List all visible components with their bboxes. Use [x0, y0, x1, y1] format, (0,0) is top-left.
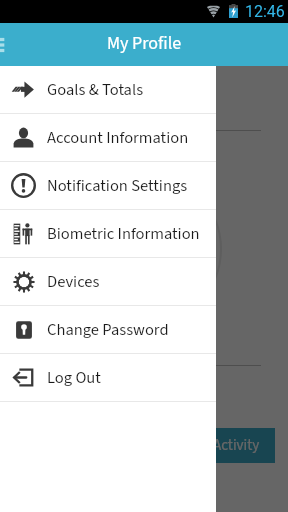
staticText: Goals & Totals [47, 78, 144, 101]
button[interactable]: Biometric Information [0, 210, 216, 258]
staticText: Log Out [47, 366, 101, 389]
button[interactable]: Change Password [0, 306, 216, 354]
staticText: Activity [213, 435, 260, 456]
staticText: Notification Settings [47, 174, 188, 197]
button[interactable]: Log Out [0, 354, 216, 402]
staticText: Account Information [47, 126, 189, 149]
button[interactable]: Activity [198, 428, 275, 463]
button[interactable]: Notification Settings [0, 162, 216, 210]
button[interactable]: Open navigation drawer [0, 27, 11, 63]
button[interactable]: Goals & Totals [0, 66, 216, 114]
staticText: Change Password [47, 318, 169, 341]
staticText: Devices [47, 270, 100, 293]
staticText: My Profile [107, 31, 182, 57]
staticText: 12:46 [245, 2, 285, 21]
staticText: Biometric Information [47, 222, 200, 245]
button[interactable]: Account Information [0, 114, 216, 162]
button[interactable]: Devices [0, 258, 216, 306]
